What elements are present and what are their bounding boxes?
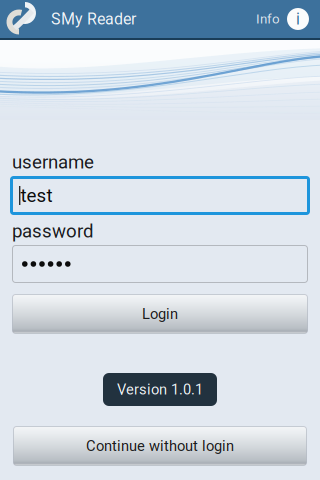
button[interactable]: Continue without login bbox=[13, 426, 307, 466]
button[interactable]: Login bbox=[12, 294, 308, 334]
staticText: i bbox=[296, 10, 300, 28]
staticText: username bbox=[12, 151, 94, 173]
staticText: password bbox=[12, 220, 94, 242]
staticText: SMy Reader bbox=[51, 10, 136, 28]
staticText: Continue without login bbox=[86, 437, 234, 455]
staticText: Login bbox=[142, 305, 178, 323]
staticText: Info bbox=[256, 11, 280, 27]
staticText: Version 1.0.1 bbox=[117, 381, 203, 398]
staticText: test bbox=[20, 185, 52, 206]
button[interactable]: Info bbox=[256, 0, 320, 38]
button[interactable]: Version 1.0.1 bbox=[103, 373, 217, 406]
